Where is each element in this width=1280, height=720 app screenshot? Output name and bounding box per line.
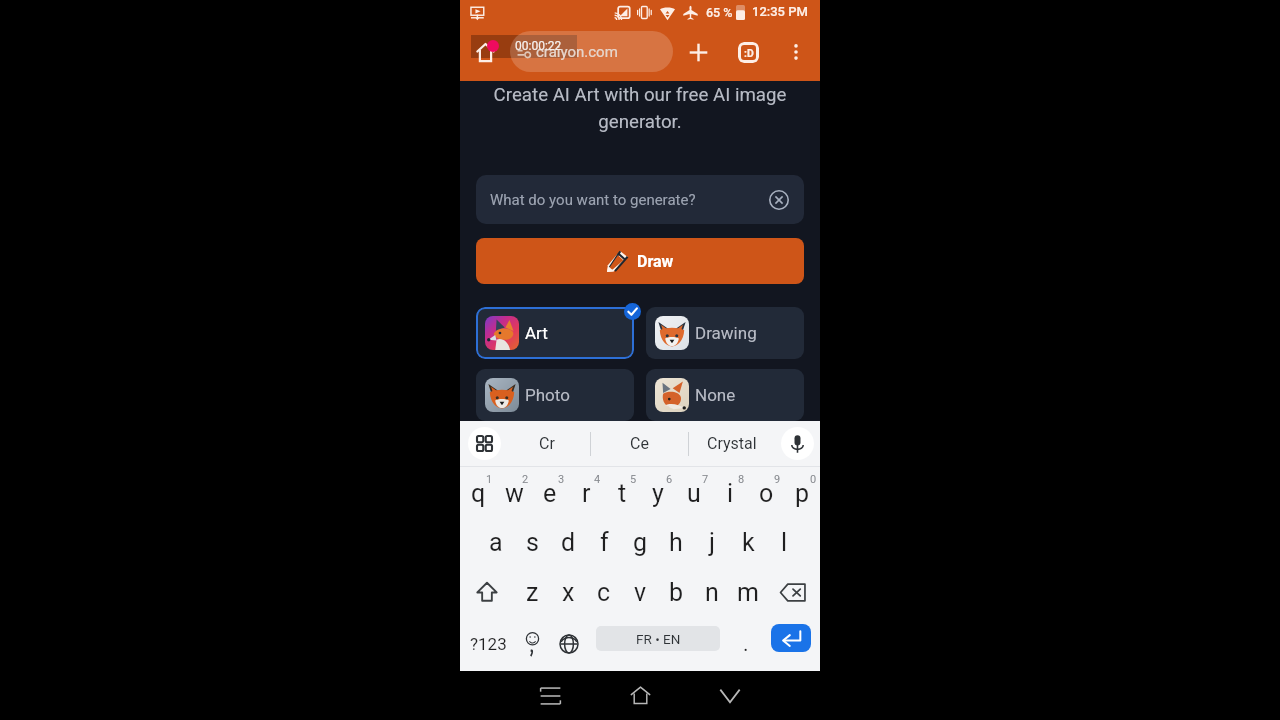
staticText: 0 [810, 473, 817, 486]
staticText: FR • EN [636, 631, 681, 647]
button[interactable]: z [514, 567, 550, 617]
staticText: 3 [558, 473, 565, 486]
button[interactable]: FR • EN [596, 626, 720, 651]
staticText: 8 [738, 473, 745, 486]
button[interactable]: Home [470, 37, 500, 67]
staticText: Art [525, 323, 548, 343]
button[interactable]: More options [781, 37, 811, 67]
staticText: m [737, 578, 759, 607]
button[interactable]: d [550, 517, 586, 567]
staticText: 6 [666, 473, 673, 486]
button[interactable]: y [640, 467, 676, 517]
staticText: 7 [702, 473, 709, 486]
staticText: 5 [630, 473, 637, 486]
button[interactable]: Cr [526, 421, 568, 466]
button[interactable]: f [586, 517, 622, 567]
staticText: u [687, 479, 701, 508]
staticText: a [489, 528, 503, 557]
button[interactable]: Photo [476, 369, 634, 421]
button[interactable]: craiyon.com [510, 31, 673, 72]
staticText: g [633, 528, 648, 557]
button[interactable]: e [532, 467, 568, 517]
staticText: l [781, 528, 788, 557]
button[interactable]: Draw [476, 238, 804, 284]
button[interactable]: Crystal [700, 421, 764, 466]
button[interactable]: b [658, 567, 694, 617]
button[interactable]: h [658, 517, 694, 567]
button[interactable]: None [646, 369, 804, 421]
staticText: j [709, 528, 715, 557]
staticText: 9 [774, 473, 781, 486]
staticText: :D [744, 47, 754, 59]
staticText: Ce [630, 434, 649, 453]
staticText: ?123 [470, 634, 507, 654]
button[interactable]: Change language [551, 617, 587, 671]
button[interactable]: Recents [528, 671, 572, 720]
staticText: 4 [594, 473, 601, 486]
staticText: n [705, 578, 719, 607]
button[interactable]: o [748, 467, 784, 517]
staticText: Draw [637, 252, 674, 271]
staticText: r [582, 479, 591, 508]
button[interactable]: Emoji [513, 617, 551, 671]
button[interactable]: g [622, 517, 658, 567]
staticText: t [618, 479, 627, 508]
staticText: o [759, 479, 774, 508]
button[interactable]: Backspace [766, 567, 820, 617]
button[interactable]: Home [618, 671, 662, 720]
staticText: q [471, 479, 486, 508]
button[interactable]: c [586, 567, 622, 617]
staticText: What do you want to generate? [490, 191, 696, 209]
staticText: 1 [486, 473, 493, 486]
staticText: 65 % [706, 5, 733, 20]
staticText: 2 [522, 473, 529, 486]
button[interactable]: m [730, 567, 766, 617]
button[interactable]: a [478, 517, 514, 567]
staticText: 12:35 PM [752, 4, 808, 19]
button[interactable]: Toolbar [468, 427, 501, 460]
staticText: d [561, 528, 576, 557]
staticText: f [600, 528, 609, 557]
button[interactable]: Tabs [733, 37, 763, 67]
staticText: i [727, 479, 734, 508]
staticText: 00:00:22 [515, 39, 562, 53]
button[interactable]: v [622, 567, 658, 617]
button[interactable]: q [460, 467, 496, 517]
button[interactable]: Enter [771, 624, 811, 652]
button[interactable]: Ce [618, 421, 660, 466]
button[interactable]: . [730, 617, 762, 671]
button[interactable]: i [712, 467, 748, 517]
button[interactable]: w [496, 467, 532, 517]
staticText: p [795, 479, 810, 508]
staticText: None [695, 385, 736, 405]
staticText: Cr [539, 434, 555, 453]
staticText: craiyon.com [536, 43, 618, 61]
button[interactable]: Art [476, 307, 634, 359]
button[interactable]: r [568, 467, 604, 517]
staticText: w [505, 479, 524, 508]
button[interactable]: n [694, 567, 730, 617]
staticText: e [543, 479, 557, 508]
button[interactable]: k [730, 517, 766, 567]
button[interactable]: ?123 [466, 617, 510, 671]
button[interactable]: t [604, 467, 640, 517]
staticText: k [742, 528, 755, 557]
button[interactable]: Voice input [781, 427, 814, 460]
button[interactable]: x [550, 567, 586, 617]
button[interactable]: New tab [683, 37, 713, 67]
button[interactable]: u [676, 467, 712, 517]
button[interactable]: Back [708, 671, 752, 720]
button[interactable]: What do you want to generate? [476, 175, 804, 224]
staticText: Drawing [695, 323, 757, 343]
button[interactable]: Drawing [646, 307, 804, 359]
staticText: v [634, 578, 647, 607]
staticText: b [669, 578, 684, 607]
staticText: h [669, 528, 683, 557]
staticText: . [743, 632, 749, 657]
staticText: Photo [525, 385, 570, 405]
button[interactable]: s [514, 517, 550, 567]
button[interactable]: j [694, 517, 730, 567]
button[interactable]: p [784, 467, 820, 517]
button[interactable]: Shift [460, 567, 514, 617]
button[interactable]: l [766, 517, 802, 567]
